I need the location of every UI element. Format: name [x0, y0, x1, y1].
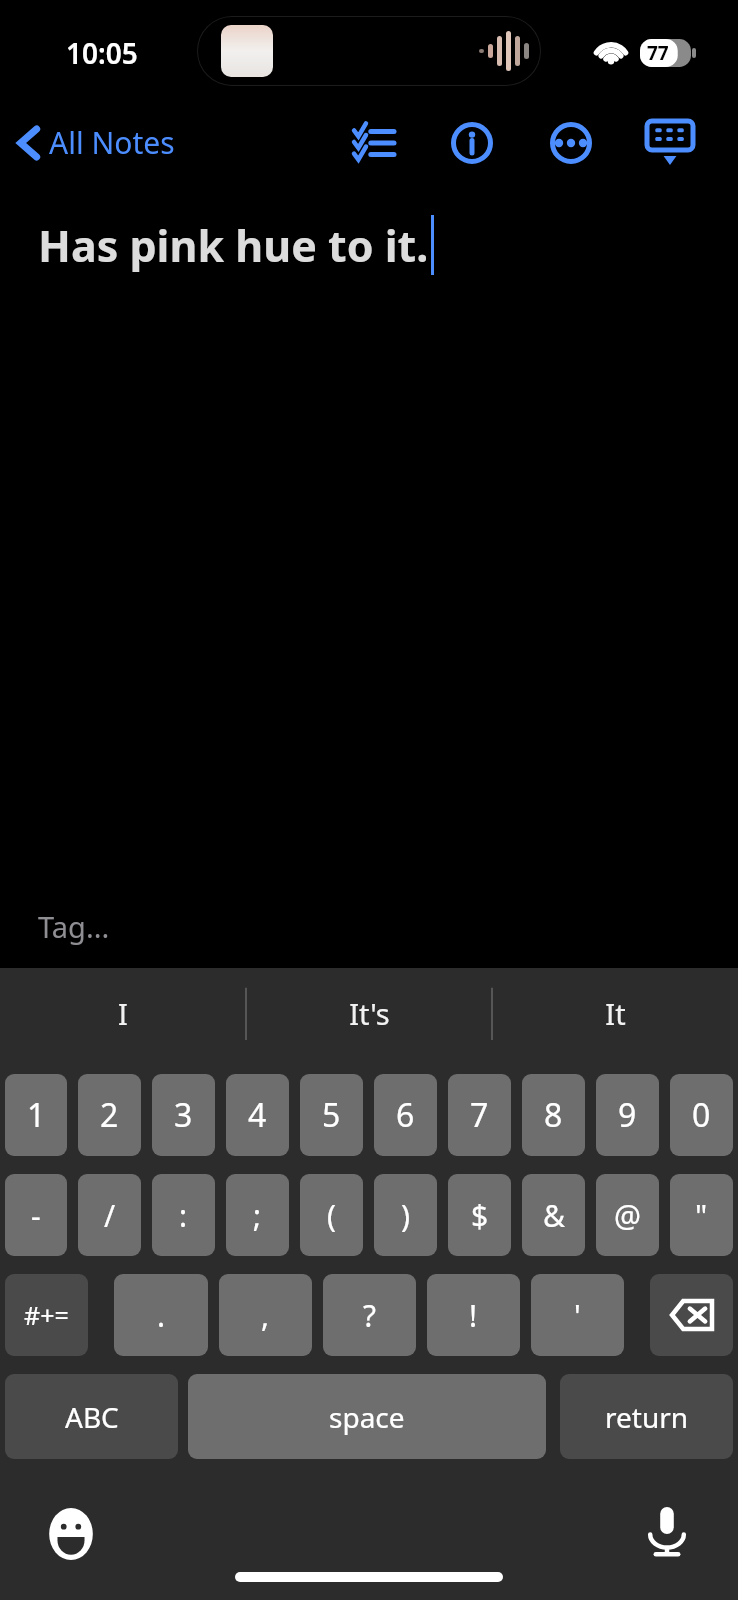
staticText: :: [179, 1195, 188, 1236]
staticText: return: [605, 1398, 689, 1436]
button[interactable]: @: [596, 1174, 659, 1256]
button[interactable]: 8: [522, 1074, 585, 1156]
staticText: 0: [692, 1093, 711, 1137]
button[interactable]: 1: [5, 1074, 67, 1156]
button[interactable]: Hide keyboard: [636, 109, 704, 177]
button[interactable]: ABC: [5, 1374, 178, 1459]
button[interactable]: All Notes: [12, 116, 181, 169]
button[interactable]: 4: [226, 1074, 289, 1156]
staticText: &: [543, 1195, 565, 1236]
staticText: ;: [253, 1195, 262, 1236]
button[interactable]: I: [0, 968, 246, 1058]
staticText: It: [605, 994, 626, 1033]
staticText: 10:05: [66, 34, 138, 72]
button[interactable]: Dictation: [638, 1503, 696, 1561]
staticText: 7: [470, 1093, 489, 1137]
staticText: ": [695, 1195, 708, 1236]
button[interactable]: 0: [670, 1074, 733, 1156]
staticText: 6: [396, 1093, 415, 1137]
button[interactable]: ': [531, 1274, 624, 1356]
staticText: #+=: [24, 1298, 69, 1332]
staticText: I: [118, 994, 128, 1033]
button[interactable]: 5: [300, 1074, 363, 1156]
button[interactable]: 2: [78, 1074, 141, 1156]
button[interactable]: Delete: [650, 1274, 733, 1356]
button[interactable]: return: [560, 1374, 733, 1459]
staticText: $: [471, 1195, 489, 1236]
staticText: /: [104, 1195, 116, 1236]
staticText: 1: [27, 1093, 46, 1137]
button[interactable]: ,: [219, 1274, 312, 1356]
button[interactable]: ?: [323, 1274, 416, 1356]
staticText: space: [329, 1398, 405, 1436]
button[interactable]: :: [152, 1174, 215, 1256]
staticText: !: [469, 1295, 478, 1336]
button[interactable]: Emoji: [42, 1505, 100, 1563]
button[interactable]: space: [188, 1374, 546, 1459]
button[interactable]: It: [492, 968, 738, 1058]
button[interactable]: (: [300, 1174, 363, 1256]
button[interactable]: &: [522, 1174, 585, 1256]
button[interactable]: Checklist: [340, 109, 408, 177]
staticText: -: [31, 1195, 41, 1236]
button[interactable]: -: [5, 1174, 67, 1256]
button[interactable]: ): [374, 1174, 437, 1256]
staticText: 3: [174, 1093, 193, 1137]
staticText: 8: [544, 1093, 563, 1137]
staticText: .: [157, 1295, 166, 1336]
button[interactable]: 3: [152, 1074, 215, 1156]
button[interactable]: #+=: [5, 1274, 88, 1356]
staticText: ?: [363, 1295, 377, 1336]
button[interactable]: ": [670, 1174, 733, 1256]
staticText: Tag...: [38, 907, 110, 946]
button[interactable]: 9: [596, 1074, 659, 1156]
staticText: 9: [618, 1093, 637, 1137]
staticText: ': [574, 1295, 581, 1336]
button[interactable]: /: [78, 1174, 141, 1256]
staticText: (: [327, 1195, 336, 1236]
staticText: It's: [349, 994, 390, 1033]
button[interactable]: Info: [438, 109, 506, 177]
staticText: Has pink hue to it.: [38, 216, 429, 275]
button[interactable]: Tag...: [0, 907, 738, 968]
staticText: 5: [322, 1093, 341, 1137]
button[interactable]: $: [448, 1174, 511, 1256]
staticText: 4: [248, 1093, 267, 1137]
button[interactable]: 6: [374, 1074, 437, 1156]
staticText: 2: [100, 1093, 119, 1137]
staticText: ,: [261, 1295, 270, 1336]
staticText: ): [401, 1195, 410, 1236]
button[interactable]: !: [427, 1274, 520, 1356]
button[interactable]: It's: [246, 968, 492, 1058]
staticText: ABC: [65, 1398, 119, 1436]
button[interactable]: .: [114, 1274, 208, 1356]
staticText: 77: [647, 40, 669, 66]
staticText: All Notes: [49, 122, 175, 163]
button[interactable]: ;: [226, 1174, 289, 1256]
button[interactable]: More options: [537, 109, 605, 177]
button[interactable]: 7: [448, 1074, 511, 1156]
staticText: @: [614, 1195, 641, 1236]
